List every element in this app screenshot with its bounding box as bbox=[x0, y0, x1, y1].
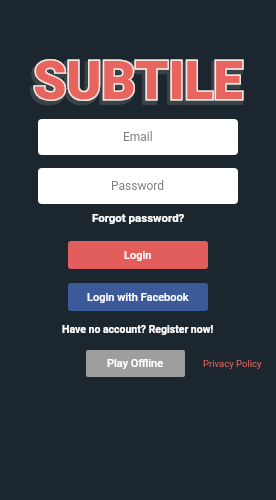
staticText: SUBTILE bbox=[31, 53, 241, 115]
staticText: SUBTILE bbox=[33, 50, 243, 112]
staticText: SUBTILE bbox=[33, 50, 243, 112]
button[interactable]: Have no account? Register now! bbox=[62, 323, 214, 335]
button[interactable]: Password bbox=[38, 168, 238, 204]
staticText: Email bbox=[123, 130, 153, 144]
button[interactable]: Login with Facebook bbox=[68, 283, 208, 311]
staticText: Password bbox=[111, 179, 165, 193]
staticText: Play Offline bbox=[107, 357, 164, 370]
button[interactable]: Play Offline bbox=[86, 350, 185, 377]
staticText: Login bbox=[124, 249, 152, 262]
staticText: Privacy Policy bbox=[203, 358, 262, 369]
button[interactable]: Email bbox=[38, 119, 238, 155]
staticText: Login with Facebook bbox=[87, 291, 189, 304]
button[interactable]: Login bbox=[68, 241, 208, 269]
button[interactable]: Forgot password? bbox=[92, 211, 185, 224]
button[interactable]: Privacy Policy bbox=[199, 350, 265, 377]
staticText: SUBTILE bbox=[31, 53, 241, 115]
